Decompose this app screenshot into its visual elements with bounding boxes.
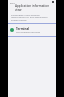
staticText: Application information view	[15, 4, 54, 12]
staticText: com.example.terminal	[16, 31, 41, 34]
staticText: Parameters and settings information for …	[11, 13, 53, 22]
staticText: Terminal	[16, 27, 30, 31]
staticText: 9:41	[10, 1, 15, 4]
